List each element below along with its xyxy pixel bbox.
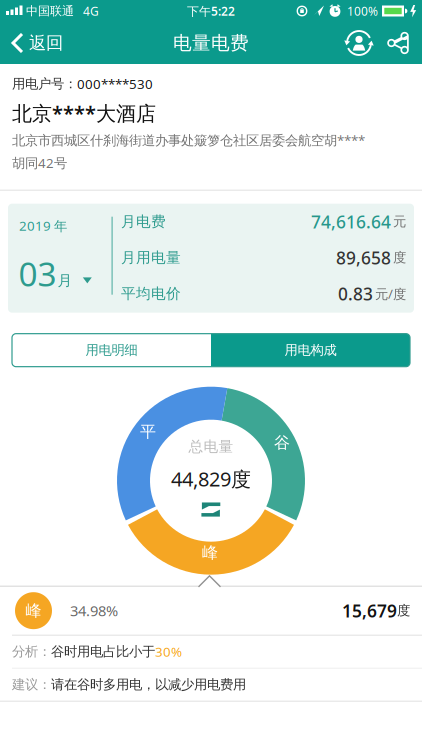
button[interactable]: 切换用户 [344, 28, 374, 58]
staticText: 月电费 [121, 213, 166, 231]
staticText: 15,679 [342, 599, 397, 622]
staticText: 4G [83, 3, 99, 19]
staticText: 月用电量 [121, 249, 181, 267]
staticText: 2019 年 [19, 217, 67, 234]
button[interactable]: 用电构成 [211, 334, 410, 367]
staticText: 100% [347, 3, 378, 19]
button[interactable]: 返回 [0, 31, 63, 54]
staticText: 中国联通 [26, 4, 74, 18]
staticText: 0.83 [338, 282, 373, 305]
staticText: 谷时用电占比小于 [51, 643, 155, 660]
staticText: 电量电费 [173, 31, 249, 54]
staticText: 胡同42号 [12, 154, 67, 172]
staticText: 平 [140, 422, 156, 442]
staticText: 34.98% [70, 601, 118, 620]
staticText: 89,658 [336, 246, 391, 269]
staticText: 000****530 [77, 75, 153, 93]
staticText: 元 [393, 213, 406, 230]
staticText: 03 [18, 251, 56, 296]
staticText: 下午5:22 [187, 3, 235, 19]
staticText: 谷 [274, 433, 290, 453]
staticText: 北京****大酒店 [12, 100, 156, 126]
staticText: 请在谷时多用电，以减少用电费用 [51, 676, 246, 693]
button[interactable]: 用电明细 [12, 334, 211, 367]
staticText: 平均电价 [121, 285, 181, 303]
button[interactable]: 2019 年 [8, 204, 414, 313]
staticText: 分析： [12, 643, 51, 660]
staticText: 用电明细 [85, 342, 137, 358]
staticText: 度 [393, 249, 406, 266]
staticText: 峰 [202, 543, 218, 563]
button[interactable]: 分享 [374, 32, 422, 54]
staticText: 度 [397, 602, 410, 619]
staticText: 月 [57, 272, 72, 290]
staticText: 44,829度 [171, 465, 251, 492]
staticText: 用电户号： [12, 76, 77, 92]
staticText: 总电量 [188, 438, 233, 456]
staticText: 返回 [29, 32, 63, 54]
staticText: 30% [155, 643, 182, 660]
staticText: 北京市西城区什刹海街道办事处簸箩仓社区居委会航空胡**** [12, 131, 365, 149]
staticText: 元/度 [375, 285, 406, 302]
staticText: 建议： [12, 676, 51, 693]
staticText: 用电构成 [284, 342, 336, 358]
button[interactable]: 峰 [0, 587, 422, 635]
staticText: 峰 [25, 601, 41, 621]
staticText: 74,616.64 [311, 210, 391, 233]
